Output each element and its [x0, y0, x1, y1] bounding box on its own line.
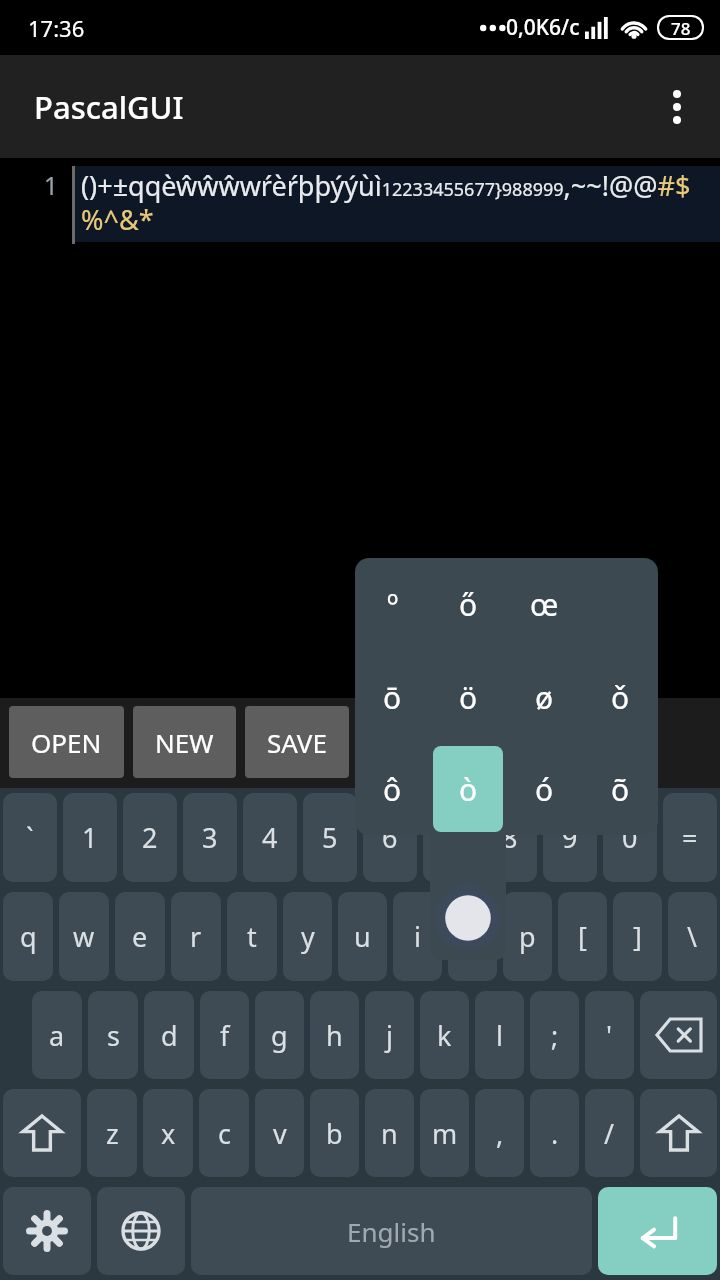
button[interactable]: y [283, 892, 332, 981]
button[interactable]: Shift [640, 1089, 717, 1177]
staticText: 7 [442, 819, 458, 856]
button[interactable]: / [585, 1089, 634, 1177]
button[interactable]: ] [613, 892, 662, 981]
button[interactable]: 5 [303, 793, 357, 882]
staticText: 0 [622, 819, 638, 856]
staticText: ; [551, 1017, 559, 1054]
staticText: 2 [142, 819, 158, 856]
button[interactable]: ö [433, 654, 503, 740]
staticText: q [20, 918, 37, 955]
button[interactable]: z [87, 1089, 137, 1177]
staticText: p [519, 918, 536, 955]
staticText: h [326, 1017, 343, 1054]
staticText: ' [606, 1017, 613, 1054]
button[interactable]: 6 [363, 793, 417, 882]
button[interactable]: 8 [483, 793, 537, 882]
button[interactable]: 7 [423, 793, 477, 882]
button[interactable]: p [503, 892, 552, 981]
staticText: i [414, 918, 421, 955]
staticText: English [347, 1214, 436, 1249]
button[interactable]: t [227, 892, 277, 981]
button[interactable]: a [32, 991, 82, 1079]
staticText: l [496, 1017, 503, 1054]
button[interactable]: ()+±qqèŵŵŵwŕèŕþþýýùì12233455677}988999,~… [81, 167, 720, 238]
staticText: = [682, 819, 698, 856]
staticText: / [604, 1115, 615, 1152]
button[interactable]: Enter [598, 1187, 717, 1275]
button[interactable]: f [200, 991, 249, 1079]
button[interactable]: ò [433, 746, 503, 832]
button[interactable]: ; [530, 991, 579, 1079]
button[interactable]: , [475, 1089, 524, 1177]
staticText: œ [530, 584, 559, 625]
staticText: 6 [382, 819, 398, 856]
staticText: 1 [0, 168, 58, 202]
staticText: . [551, 1115, 559, 1152]
button[interactable]: ' [585, 991, 634, 1079]
button[interactable]: º [358, 561, 427, 648]
button[interactable]: s [88, 991, 138, 1079]
button[interactable]: b [310, 1089, 359, 1177]
staticText: 0,0K6/c [506, 13, 580, 42]
button[interactable]: 2 [123, 793, 177, 882]
staticText: 5 [322, 819, 338, 856]
button[interactable]: d [144, 991, 194, 1079]
button[interactable]: Change language [97, 1187, 185, 1275]
button[interactable]: ô [358, 746, 427, 832]
button[interactable]: m [420, 1089, 469, 1177]
button[interactable]: More options [648, 78, 706, 136]
button[interactable]: ō [358, 654, 427, 740]
button[interactable]: j [365, 991, 414, 1079]
button[interactable]: k [420, 991, 469, 1079]
button[interactable]: 1 [63, 793, 117, 882]
staticText: ò [459, 769, 478, 810]
staticText: ø [535, 677, 554, 718]
button[interactable]: œ [509, 561, 579, 648]
button[interactable]: [ [558, 892, 607, 981]
button[interactable]: 9 [543, 793, 597, 882]
button[interactable]: RUN [380, 706, 435, 778]
button[interactable]: ǒ [585, 654, 655, 740]
button[interactable]: Shift [3, 1089, 81, 1177]
button[interactable]: Settings [3, 1187, 91, 1275]
staticText: ó [535, 769, 554, 810]
staticText: ()+±qqèŵŵŵwŕèŕþþýýùì12233455677}988999,~… [81, 167, 720, 238]
button[interactable]: l [475, 991, 524, 1079]
button[interactable]: w [59, 892, 109, 981]
button[interactable]: n [365, 1089, 414, 1177]
staticText: [ [578, 918, 587, 955]
staticText: z [106, 1115, 119, 1152]
button[interactable]: o [448, 892, 497, 981]
button[interactable]: ó [509, 746, 579, 832]
staticText: c [218, 1115, 231, 1152]
button[interactable]: g [255, 991, 304, 1079]
button[interactable]: õ [585, 746, 655, 832]
button[interactable]: \ [668, 892, 717, 981]
button[interactable]: 3 [183, 793, 237, 882]
button[interactable]: v [255, 1089, 304, 1177]
button[interactable]: h [310, 991, 359, 1079]
button[interactable]: SAVE [267, 706, 327, 778]
button[interactable]: NEW [155, 706, 214, 778]
button[interactable]: 4 [243, 793, 297, 882]
staticText: º [387, 584, 399, 625]
button[interactable]: i [393, 892, 442, 981]
button[interactable]: x [143, 1089, 193, 1177]
staticText: n [381, 1115, 398, 1152]
button[interactable]: e [115, 892, 165, 981]
button[interactable]: . [530, 1089, 579, 1177]
button[interactable]: OPEN [31, 706, 102, 778]
button[interactable]: Backspace [640, 991, 717, 1079]
staticText: 9 [562, 819, 578, 856]
button[interactable]: u [338, 892, 387, 981]
button[interactable]: c [199, 1089, 249, 1177]
button[interactable]: ø [509, 654, 579, 740]
button[interactable]: English [191, 1187, 592, 1275]
button[interactable]: = [663, 793, 717, 882]
button[interactable]: r [171, 892, 221, 981]
button[interactable]: ő [433, 561, 503, 648]
staticText: ] [633, 918, 642, 955]
button[interactable]: 0 [603, 793, 657, 882]
button[interactable]: ` [3, 793, 57, 882]
button[interactable]: q [3, 892, 53, 981]
